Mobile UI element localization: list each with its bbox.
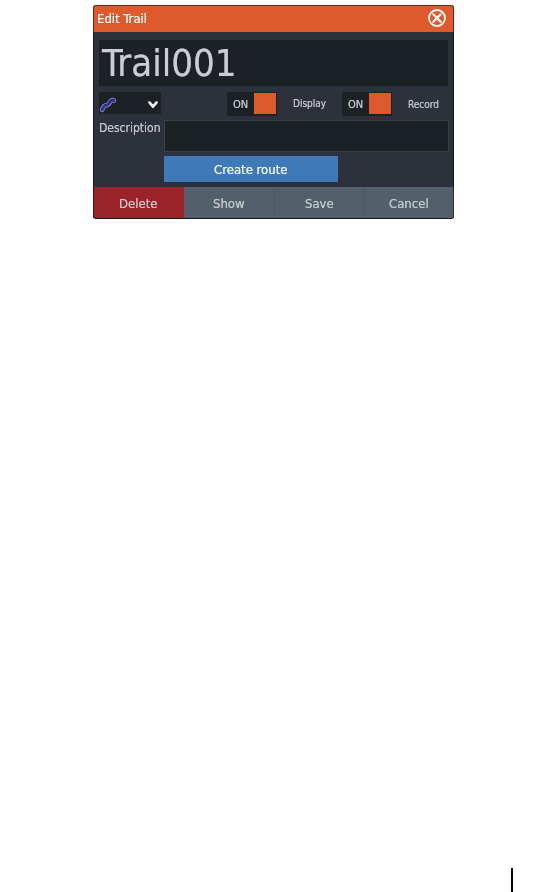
staticText: Description: [99, 121, 161, 135]
staticText: Cancel: [389, 196, 429, 211]
button[interactable]: Close: [426, 7, 448, 29]
staticText: ON: [348, 98, 364, 111]
staticText: Record: [408, 99, 440, 111]
staticText: Delete: [119, 196, 158, 211]
button[interactable]: Cancel: [364, 187, 454, 218]
staticText: Trail001: [102, 41, 237, 85]
button[interactable]: Description: [164, 120, 449, 152]
staticText: Edit Trail: [97, 11, 148, 26]
button[interactable]: Save: [274, 187, 364, 218]
staticText: ON: [233, 98, 249, 111]
button[interactable]: Trail style: [99, 92, 161, 114]
button[interactable]: Create route: [164, 156, 338, 182]
staticText: Save: [305, 196, 334, 211]
staticText: Show: [213, 196, 245, 211]
button[interactable]: Show: [184, 187, 274, 218]
staticText: Display: [293, 98, 327, 110]
button[interactable]: Toggle on: [227, 92, 277, 116]
button[interactable]: Toggle on: [342, 92, 392, 116]
button[interactable]: Delete: [93, 187, 184, 218]
button[interactable]: Trail001: [99, 40, 448, 86]
staticText: Create route: [214, 162, 288, 177]
